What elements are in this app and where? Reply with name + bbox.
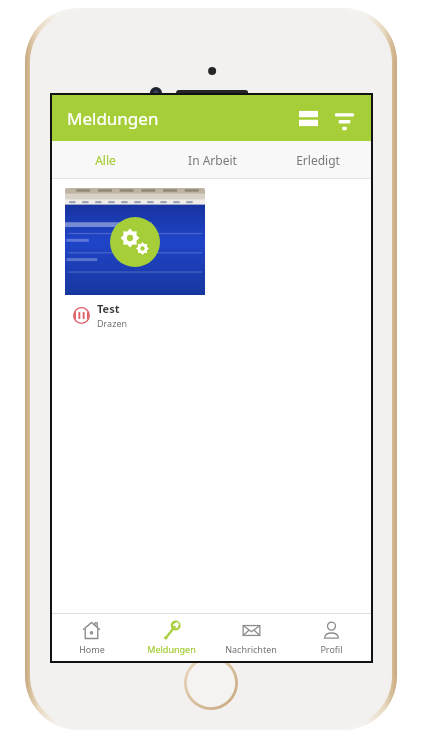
button[interactable]: Erledigt — [265, 141, 371, 178]
button[interactable]: In Arbeit — [159, 141, 265, 178]
staticText: Nachrichten — [225, 643, 277, 655]
button[interactable]: Test — [65, 188, 205, 335]
staticText: Meldungen — [147, 643, 196, 655]
button[interactable]: Ansicht wechseln — [291, 101, 325, 135]
button[interactable]: Filter — [327, 101, 361, 135]
staticText: In Arbeit — [188, 152, 237, 168]
button[interactable]: Home — [52, 614, 131, 661]
button[interactable]: Profil — [291, 614, 371, 661]
staticText: Drazen — [97, 317, 128, 329]
staticText: Alle — [95, 152, 116, 168]
button[interactable]: Nachrichten — [211, 614, 291, 661]
staticText: Test — [97, 301, 120, 316]
staticText: Meldungen — [67, 107, 159, 130]
button[interactable]: Meldungen — [131, 614, 211, 661]
staticText: Home — [79, 643, 105, 655]
staticText: Erledigt — [296, 152, 340, 168]
staticText: Profil — [320, 643, 343, 655]
button[interactable]: Alle — [52, 141, 159, 178]
